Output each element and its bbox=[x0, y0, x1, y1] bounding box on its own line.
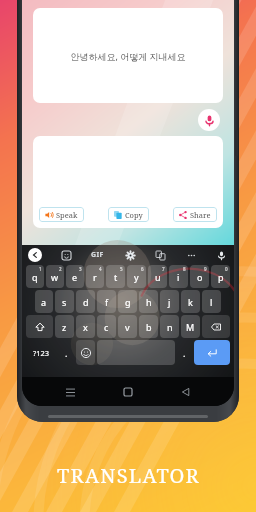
staticText: i bbox=[177, 271, 180, 283]
staticText: Copy bbox=[125, 210, 143, 220]
staticText: s bbox=[62, 296, 67, 308]
staticText: k bbox=[188, 296, 193, 308]
staticText: g bbox=[125, 296, 131, 308]
button[interactable]: k bbox=[181, 290, 200, 313]
button[interactable]: Shift bbox=[26, 315, 53, 338]
staticText: . bbox=[183, 347, 186, 359]
staticText: GIF bbox=[91, 250, 104, 260]
button[interactable]: u bbox=[148, 265, 167, 288]
staticText: w bbox=[51, 271, 59, 283]
staticText: 4 bbox=[99, 266, 102, 272]
button[interactable]: ?123 bbox=[26, 340, 57, 365]
button[interactable]: More bbox=[184, 248, 198, 262]
button[interactable]: Emoji bbox=[76, 340, 95, 365]
staticText: b bbox=[146, 321, 152, 333]
button[interactable]: l bbox=[202, 290, 221, 313]
staticText: n bbox=[167, 321, 173, 333]
staticText: 6 bbox=[141, 266, 144, 272]
button[interactable]: i bbox=[169, 265, 188, 288]
button[interactable]: Translate bbox=[153, 248, 167, 262]
button[interactable]: Back bbox=[176, 382, 196, 402]
button[interactable]: Speak bbox=[39, 207, 84, 222]
button[interactable]: b bbox=[139, 315, 158, 338]
staticText: d bbox=[83, 296, 89, 308]
staticText: o bbox=[197, 271, 203, 283]
button[interactable]: j bbox=[160, 290, 179, 313]
staticText: 1 bbox=[39, 266, 42, 272]
button[interactable]: Home bbox=[118, 382, 138, 402]
staticText: 5 bbox=[120, 266, 123, 272]
staticText: r bbox=[93, 271, 97, 283]
staticText: p bbox=[218, 271, 224, 283]
staticText: q bbox=[32, 271, 38, 283]
button[interactable]: Enter bbox=[194, 340, 230, 365]
button[interactable]: Recents bbox=[60, 382, 80, 402]
button[interactable]: Copy bbox=[108, 207, 149, 222]
button[interactable]: q bbox=[26, 265, 44, 288]
button[interactable]: f bbox=[97, 290, 116, 313]
staticText: Share bbox=[190, 210, 211, 220]
button[interactable]: Back bbox=[28, 248, 42, 262]
button[interactable]: v bbox=[118, 315, 137, 338]
staticText: 3 bbox=[79, 266, 82, 272]
staticText: c bbox=[104, 321, 109, 333]
staticText: 안녕하세요, 어떻게 지내세요 bbox=[70, 50, 186, 62]
staticText: h bbox=[146, 296, 152, 308]
button[interactable]: e bbox=[66, 265, 84, 288]
staticText: M bbox=[186, 321, 195, 333]
staticText: y bbox=[134, 271, 139, 283]
staticText: . bbox=[65, 347, 68, 359]
staticText: 7 bbox=[162, 266, 165, 272]
button[interactable]: x bbox=[76, 315, 95, 338]
button[interactable]: w bbox=[46, 265, 64, 288]
button[interactable]: g bbox=[118, 290, 137, 313]
button[interactable]: M bbox=[181, 315, 200, 338]
staticText: 2 bbox=[59, 266, 62, 272]
button[interactable]: h bbox=[139, 290, 158, 313]
button[interactable]: Voice typing bbox=[214, 248, 228, 262]
staticText: v bbox=[125, 321, 130, 333]
button[interactable]: z bbox=[55, 315, 74, 338]
button[interactable]: p bbox=[211, 265, 230, 288]
button[interactable]: . bbox=[177, 340, 192, 365]
button[interactable]: n bbox=[160, 315, 179, 338]
staticText: e bbox=[72, 271, 78, 283]
staticText: u bbox=[155, 271, 161, 283]
button[interactable]: a bbox=[35, 290, 53, 313]
staticText: 8 bbox=[183, 266, 186, 272]
button[interactable]: Share bbox=[173, 207, 217, 222]
button[interactable]: r bbox=[86, 265, 104, 288]
button[interactable]: Voice input bbox=[198, 109, 220, 131]
button[interactable]: GIF bbox=[89, 248, 106, 262]
staticText: z bbox=[62, 321, 67, 333]
button[interactable]: Backspace bbox=[202, 315, 230, 338]
staticText: TRANSLATOR bbox=[57, 462, 200, 489]
button[interactable]: d bbox=[76, 290, 95, 313]
staticText: Speak bbox=[56, 210, 78, 220]
button[interactable]: Space bbox=[97, 340, 175, 365]
staticText: 9 bbox=[204, 266, 207, 272]
staticText: a bbox=[41, 296, 47, 308]
button[interactable]: c bbox=[97, 315, 116, 338]
staticText: t bbox=[114, 271, 118, 283]
staticText: j bbox=[168, 296, 171, 308]
staticText: 0 bbox=[225, 266, 228, 272]
button[interactable]: y bbox=[127, 265, 146, 288]
button[interactable]: s bbox=[55, 290, 74, 313]
button[interactable]: t bbox=[106, 265, 125, 288]
button[interactable]: Stickers bbox=[59, 248, 73, 262]
staticText: f bbox=[105, 296, 109, 308]
staticText: x bbox=[83, 321, 88, 333]
button[interactable]: . bbox=[59, 340, 74, 365]
staticText: l bbox=[210, 296, 213, 308]
button[interactable]: Settings bbox=[123, 248, 137, 262]
staticText: ?123 bbox=[33, 348, 50, 358]
button[interactable]: o bbox=[190, 265, 209, 288]
button[interactable]: 안녕하세요, 어떻게 지내세요 bbox=[33, 8, 223, 103]
